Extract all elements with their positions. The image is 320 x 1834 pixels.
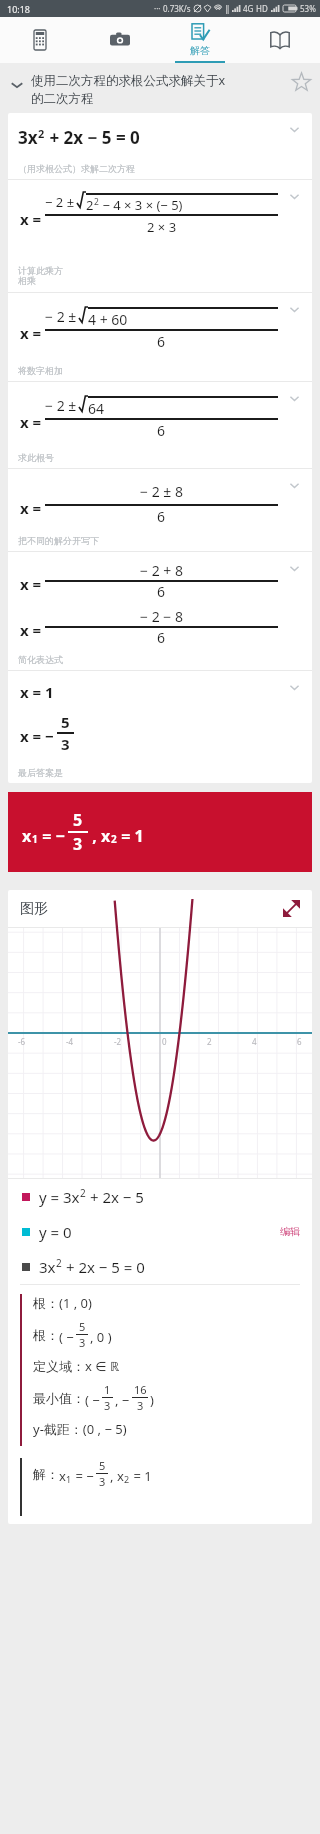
staticText: 2 — [86, 196, 94, 214]
staticText: 4 — [252, 1036, 257, 1047]
staticText: 1 — [66, 1473, 72, 1485]
staticText: − 2 − 8 — [140, 607, 183, 626]
staticText: 4 + 60 — [88, 310, 128, 329]
staticText: ‖ — [225, 3, 230, 14]
staticText: ··· — [154, 3, 161, 14]
staticText: − 2 ± — [45, 396, 77, 415]
staticText: − 2 ± — [45, 307, 77, 326]
staticText: 16 — [134, 1382, 147, 1397]
staticText: 根： — [33, 1327, 59, 1343]
button[interactable]: 解答 — [160, 17, 240, 63]
staticText: 编辑 — [280, 1225, 300, 1238]
staticText: -2 — [114, 1036, 122, 1047]
staticText: 3 — [79, 1335, 86, 1350]
staticText: 将数字相加 — [18, 365, 63, 376]
staticText: ) — [150, 1391, 154, 1409]
staticText: 2 — [111, 832, 117, 846]
button[interactable]: y = 3x — [8, 1179, 312, 1214]
staticText: x = — [20, 412, 42, 432]
staticText: 定义域：x ∈ ℝ — [33, 1357, 120, 1375]
staticText: 最后答案是 — [18, 767, 63, 778]
staticText: 2 — [56, 1256, 62, 1270]
staticText: 3 — [104, 1398, 111, 1413]
staticText: x = − — [20, 726, 54, 746]
button[interactable]: x = 1 — [8, 671, 312, 783]
staticText: 1 — [32, 832, 38, 846]
staticText: -6 — [18, 1036, 26, 1047]
staticText: 最小值： — [33, 1390, 85, 1406]
staticText: 5 — [61, 712, 70, 732]
staticText: 图形 — [20, 900, 48, 918]
staticText: y = 3x — [39, 1187, 80, 1207]
staticText: x — [22, 825, 32, 847]
button[interactable]: Expand graph — [283, 900, 300, 917]
button[interactable]: x = — [8, 180, 312, 292]
staticText: x — [101, 825, 111, 847]
button[interactable]: Favorite — [291, 72, 312, 93]
button[interactable]: Camera — [80, 17, 160, 63]
button[interactable]: 3x — [8, 113, 312, 179]
button[interactable]: x = — [8, 552, 312, 670]
staticText: 5 — [79, 1319, 86, 1334]
staticText: 4G — [243, 3, 254, 14]
staticText: 6 — [157, 582, 166, 601]
staticText: -4 — [66, 1036, 74, 1047]
staticText: + 2x − 5 — [86, 1187, 144, 1207]
staticText: 把不同的解分开写下 — [18, 535, 99, 546]
staticText: 3x — [18, 126, 38, 149]
staticText: − 2 + 8 — [140, 561, 183, 580]
staticText: 5 — [73, 809, 83, 831]
staticText: 64 — [88, 399, 105, 418]
staticText: （用求根公式）求解二次方程 — [18, 163, 135, 174]
staticText: 5 — [99, 1458, 106, 1473]
button[interactable]: 编辑 — [272, 1225, 312, 1238]
staticText: 简化表达式 — [18, 654, 63, 665]
button[interactable]: x = — [8, 469, 312, 551]
button[interactable]: x = — [8, 293, 312, 381]
staticText: 2 — [207, 1036, 212, 1047]
button[interactable]: Calculator — [0, 17, 80, 63]
staticText: = 1 — [117, 825, 144, 847]
staticText: 3 — [61, 734, 70, 754]
button[interactable]: 使用二次方程的求根公式求解关于x 的二次方程 — [0, 63, 320, 113]
staticText: 53% — [300, 3, 316, 14]
staticText: x = — [20, 620, 42, 640]
button[interactable]: x = — [8, 382, 312, 468]
staticText: x = — [20, 323, 42, 343]
staticText: = − — [38, 825, 65, 847]
button[interactable]: y = 0 — [8, 1214, 312, 1249]
staticText: 2 — [94, 196, 99, 208]
staticText: x = 1 — [20, 682, 54, 702]
staticText: − 2 ± 8 — [140, 482, 183, 501]
staticText: (1 , 0) — [59, 1294, 92, 1312]
staticText: 求此根号 — [18, 452, 54, 463]
staticText: , — [110, 1467, 117, 1485]
staticText: 1 — [104, 1382, 111, 1397]
staticText: ( − — [59, 1328, 74, 1346]
staticText: − 2 ± — [45, 193, 75, 211]
staticText: 使用二次方程的求根公式求解关于x 的二次方程 — [31, 72, 288, 106]
staticText: 2 — [38, 126, 45, 141]
button[interactable]: 3x — [8, 1249, 312, 1284]
staticText: 3 — [137, 1398, 144, 1413]
button[interactable]: x — [8, 792, 312, 872]
staticText: x — [59, 1467, 66, 1485]
staticText: x = — [20, 209, 42, 229]
staticText: 6 — [157, 332, 166, 351]
staticText: HD — [256, 3, 268, 14]
staticText: 6 — [157, 421, 166, 440]
staticText: 6 — [157, 628, 166, 647]
staticText: 0 — [162, 1036, 167, 1047]
staticText: 6 — [157, 507, 166, 526]
staticText: , 0 ) — [90, 1328, 112, 1346]
staticText: 解： — [33, 1466, 59, 1482]
staticText: x — [117, 1467, 124, 1485]
staticText: + 2x − 5 = 0 — [62, 1257, 145, 1277]
staticText: ( − — [85, 1391, 100, 1409]
staticText: y-截距：(0 , − 5) — [33, 1420, 127, 1438]
staticText: 3x — [39, 1257, 56, 1277]
staticText: 2 × 3 — [147, 218, 177, 236]
staticText: = − — [72, 1467, 94, 1485]
button[interactable]: Dictionary — [240, 17, 320, 63]
staticText: 计算此乘方 相乘 — [18, 265, 63, 287]
